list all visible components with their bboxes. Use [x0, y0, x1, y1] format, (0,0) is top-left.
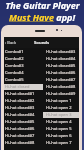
staticText: Hi-hat closed#3 — [5, 105, 35, 110]
button[interactable]: Hi-hat closed#9 — [43, 90, 79, 97]
staticText: Sounds — [34, 40, 50, 46]
staticText: ‹ Back — [5, 40, 17, 45]
button[interactable]: Hi-hat open 7 — [43, 139, 79, 146]
button[interactable]: Hi-hat open 2 — [43, 104, 79, 111]
staticText: Hi-hat closed#8 — [46, 84, 76, 89]
button[interactable]: Hi-hat open 1 — [43, 97, 79, 104]
button[interactable]: Hi-hat closed#4 — [4, 111, 43, 118]
button[interactable]: Hi-hat closed#4 — [43, 55, 79, 62]
staticText: Hi-hat closed#1 — [5, 91, 35, 96]
staticText: Hi-hat open 5 — [46, 126, 72, 131]
button[interactable]: Combo#1 — [4, 48, 43, 55]
staticText: app! — [54, 11, 75, 23]
staticText: Combo#2 — [5, 56, 24, 61]
button[interactable]: Hi-hat closed#7 — [4, 132, 43, 139]
staticText: Combo#5 — [5, 77, 24, 82]
staticText: The Guitar Player — [5, 0, 80, 11]
button[interactable]: Hi-hat closed#8 — [43, 83, 79, 90]
staticText: Hi-hat open 4 — [46, 119, 72, 124]
staticText: Hi-hat closed#2 — [5, 98, 35, 103]
staticText: Hi-hat open 6 — [46, 133, 72, 138]
button[interactable]: Hi-hat closed#5 — [43, 62, 79, 69]
button[interactable]: Hi-hat open 6 — [43, 132, 79, 139]
staticText: Hi-hat closed#6 — [5, 126, 35, 131]
button[interactable]: Combo#4 — [4, 69, 43, 76]
button[interactable]: Hi-hat closed — [4, 83, 43, 90]
staticText: Hi-hat open 2 — [46, 105, 72, 110]
button[interactable]: Hi-hat open 3 — [43, 111, 79, 118]
button[interactable]: Hi-hat closed#8 — [4, 139, 43, 146]
staticText: Hi-hat closed#7 — [5, 133, 35, 138]
button[interactable]: Combo#3 — [4, 62, 43, 69]
staticText: Must Have — [9, 11, 54, 23]
button[interactable]: Hi-hat closed#1 — [4, 90, 43, 97]
button[interactable]: Combo#2 — [4, 55, 43, 62]
staticText: Hi-hat closed — [5, 84, 30, 89]
staticText: Combo#4 — [5, 70, 24, 75]
button[interactable]: Hi-hat closed#2 — [4, 97, 43, 104]
staticText: Combo#3 — [5, 63, 24, 68]
staticText: Hi-hat closed#3 — [46, 49, 76, 54]
staticText: Hi-hat closed#6 — [46, 70, 76, 75]
staticText: Hi-hat closed#9 — [46, 91, 76, 96]
button[interactable]: Hi-hat open 5 — [43, 125, 79, 132]
button[interactable]: Hi-hat closed#7 — [43, 76, 79, 83]
button[interactable]: Combo#5 — [4, 76, 43, 83]
button[interactable]: ‹ Back — [4, 37, 19, 48]
button[interactable]: Hi-hat closed#3 — [4, 104, 43, 111]
staticText: Hi-hat open 1 — [46, 98, 72, 103]
staticText: Combo#1 — [5, 49, 24, 54]
button[interactable]: Hi-hat closed#3 — [43, 48, 79, 55]
staticText: Hi-hat closed#8 — [5, 140, 35, 145]
button[interactable]: Hi-hat open 4 — [43, 118, 79, 125]
staticText: Hi-hat closed#7 — [46, 77, 76, 82]
button[interactable]: Hi-hat closed#6 — [4, 125, 43, 132]
button[interactable]: Hi-hat closed#6 — [43, 69, 79, 76]
staticText: Hi-hat open 7 — [46, 140, 72, 145]
staticText: Hi-hat open 3 — [46, 112, 72, 117]
staticText: Hi-hat closed#4 — [46, 56, 76, 61]
staticText: Hi-hat closed#4 — [5, 112, 35, 117]
staticText: Hi-hat closed#5 — [5, 119, 35, 124]
staticText: Hi-hat closed#5 — [46, 63, 76, 68]
button[interactable]: Hi-hat closed#5 — [4, 118, 43, 125]
